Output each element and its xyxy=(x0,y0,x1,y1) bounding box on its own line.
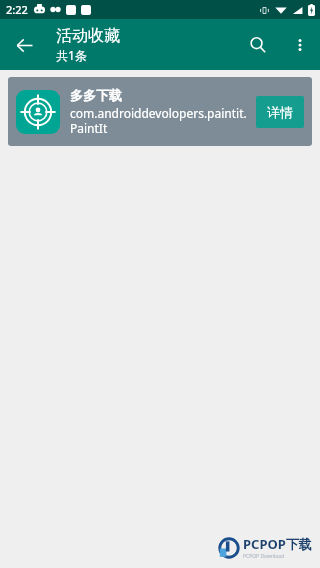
staticText: com.androiddevolopers.paintit.PaintIt xyxy=(70,105,248,136)
staticText: PCPOP下载 xyxy=(243,535,312,553)
staticText: 详情 xyxy=(267,104,293,120)
button[interactable]: Back xyxy=(4,25,44,65)
staticText: 多多下载 xyxy=(70,87,122,103)
button[interactable]: 详情 xyxy=(256,96,304,128)
staticText: 活动收藏 xyxy=(56,26,120,46)
button[interactable]: More options xyxy=(280,25,320,65)
staticText: 2:22 xyxy=(6,2,28,17)
staticText: 共1条 xyxy=(56,47,87,63)
button[interactable]: Search xyxy=(236,23,280,67)
button[interactable]: 多多下载 xyxy=(8,77,312,146)
staticText: PCPOP Download xyxy=(243,553,285,560)
